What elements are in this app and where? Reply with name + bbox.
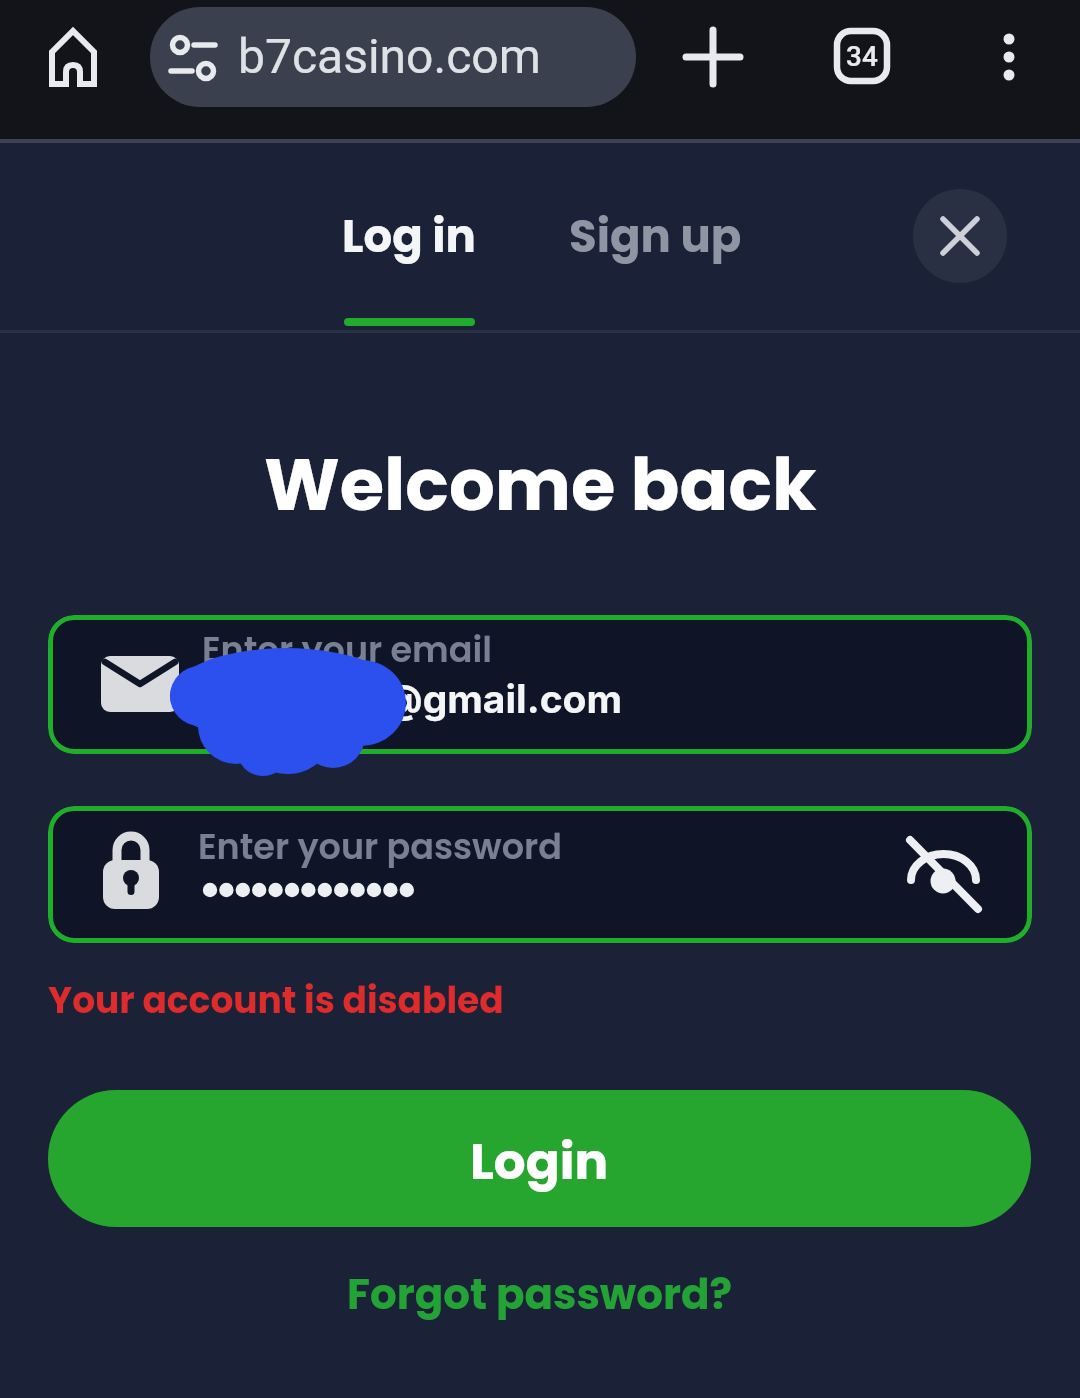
staticText: 34	[846, 40, 878, 73]
button[interactable]: Forgot password?	[0, 1258, 1080, 1330]
button[interactable]: Enter your password	[48, 806, 1032, 943]
staticText: Enter your password	[198, 822, 562, 871]
button[interactable]	[44, 26, 102, 90]
button[interactable]	[913, 189, 1007, 283]
button[interactable]: 34	[834, 28, 890, 84]
staticText: Sign up	[569, 205, 742, 268]
button[interactable]	[992, 24, 1026, 92]
button[interactable]: Enter your email	[48, 615, 1032, 754]
button[interactable]	[902, 828, 986, 912]
staticText: Log in	[342, 205, 476, 268]
staticText: Enter your email	[202, 625, 492, 674]
button[interactable]: Log in	[320, 190, 498, 282]
staticText: Your account is disabled	[48, 975, 504, 1025]
button[interactable]: b7casino.com	[150, 7, 636, 107]
button[interactable]	[684, 28, 742, 86]
staticText: @gmail.com	[383, 675, 623, 722]
staticText: Forgot password?	[347, 1265, 733, 1324]
button[interactable]: Login	[48, 1090, 1031, 1227]
staticText: Login	[470, 1127, 609, 1197]
staticText: Welcome back	[264, 434, 817, 535]
staticText: b7casino.com	[238, 28, 541, 84]
button[interactable]: Sign up	[560, 190, 750, 282]
